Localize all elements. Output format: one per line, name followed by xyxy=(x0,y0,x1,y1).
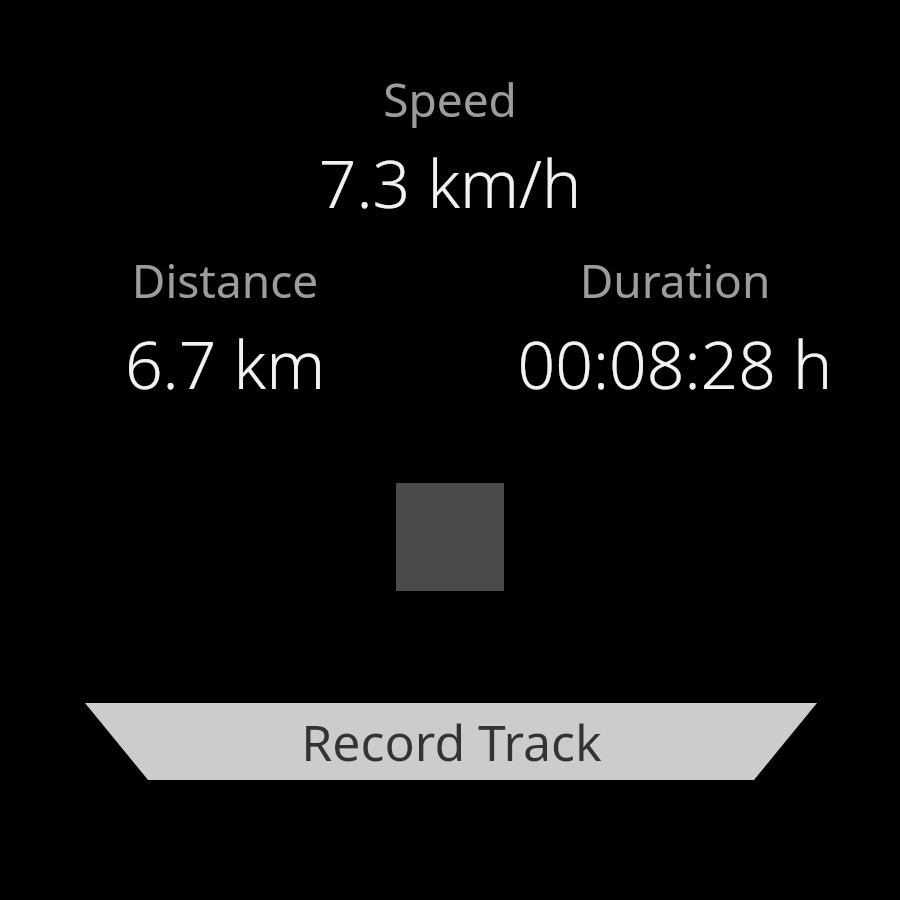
staticText: 00:08:28 h xyxy=(450,318,900,408)
staticText: Distance xyxy=(0,249,450,312)
staticText: 7.3 km/h xyxy=(0,137,900,227)
button[interactable]: Record Track xyxy=(85,703,817,780)
staticText: Record Track xyxy=(301,708,602,776)
staticText: 6.7 km xyxy=(0,318,450,408)
staticText: Duration xyxy=(450,249,900,312)
staticText: Speed xyxy=(0,68,900,131)
